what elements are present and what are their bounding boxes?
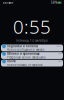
staticText: 5 мин xyxy=(58,53,62,55)
staticText: пятница, 13 сентября xyxy=(16,39,48,42)
staticText: Подписки и каналы xyxy=(7,44,38,48)
staticText: Почта xyxy=(7,59,16,63)
button[interactable]: Почта xyxy=(1,60,63,66)
staticText: 58% xyxy=(51,1,57,4)
staticText: сейчас xyxy=(56,45,62,47)
button[interactable]: Облако и хранилище xyxy=(1,52,63,59)
button[interactable]: Подписки и каналы xyxy=(1,44,63,51)
staticText: Новое сообщение в канале xyxy=(7,48,44,51)
staticText: Облако и хранилище xyxy=(7,52,40,55)
staticText: 0:55 xyxy=(13,14,51,39)
staticText: 12 мин xyxy=(57,60,62,62)
staticText: Билайн xyxy=(2,1,13,4)
staticText: Новое письмо от сервиса xyxy=(7,63,42,67)
staticText: Резервная копия завершена xyxy=(7,56,45,59)
